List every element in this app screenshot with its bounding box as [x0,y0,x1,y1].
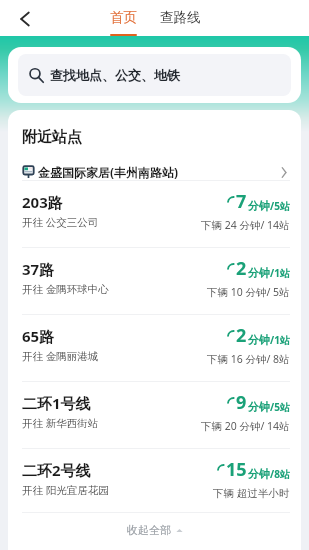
staticText: 查找地点、公交、地铁 [50,67,180,83]
staticText: 7 [236,189,247,214]
staticText: 下辆 16 分钟/ 8站 [207,352,290,366]
staticText: 开往 阳光宜居花园 [22,483,109,497]
button[interactable]: 二环2号线 [8,448,301,515]
button[interactable]: 查找地点、公交、地铁 [18,54,291,96]
staticText: 开往 金隅环球中心 [22,282,109,296]
staticText: 分钟 [248,266,270,280]
staticText: 37路 [22,259,55,279]
staticText: /8站 [270,467,290,481]
staticText: /1站 [270,266,290,280]
staticText: /5站 [270,400,290,414]
button[interactable]: 二环1号线 [8,381,301,448]
staticText: 二环1号线 [22,393,91,413]
button[interactable]: 查路线 [156,0,205,35]
staticText: 15 [226,457,247,482]
staticText: 首页 [110,9,137,26]
button[interactable]: 首页 [106,0,141,36]
staticText: 附近站点 [22,128,82,147]
button[interactable]: 收起全部 [8,516,301,550]
staticText: 金盛国际家居(丰州南路站) [38,164,179,180]
button[interactable]: Back [10,3,40,33]
staticText: 开往 公交三公司 [22,215,99,229]
button[interactable]: 金盛国际家居(丰州南路站) [8,163,301,180]
staticText: 查路线 [160,9,201,26]
button[interactable]: 65路 [8,314,301,381]
staticText: 开往 新华西街站 [22,416,99,430]
staticText: 203路 [22,192,63,212]
staticText: 下辆 20 分钟/ 14站 [201,419,290,433]
staticText: 65路 [22,326,55,346]
staticText: /1站 [270,333,290,347]
staticText: 分钟 [248,199,270,213]
staticText: 下辆 24 分钟/ 14站 [201,218,290,232]
staticText: 下辆 10 分钟/ 5站 [207,285,290,299]
staticText: 收起全部 [127,523,171,537]
button[interactable]: 203路 [8,180,301,247]
staticText: 二环2号线 [22,460,91,480]
staticText: /5站 [270,199,290,213]
staticText: 分钟 [248,400,270,414]
staticText: 9 [236,390,247,415]
staticText: 2 [236,256,247,281]
staticText: 开往 金隅丽港城 [22,349,99,363]
staticText: 分钟 [248,467,270,481]
button[interactable]: 37路 [8,247,301,314]
staticText: 分钟 [248,333,270,347]
staticText: 下辆 超过半小时 [213,486,290,500]
staticText: 2 [236,323,247,348]
